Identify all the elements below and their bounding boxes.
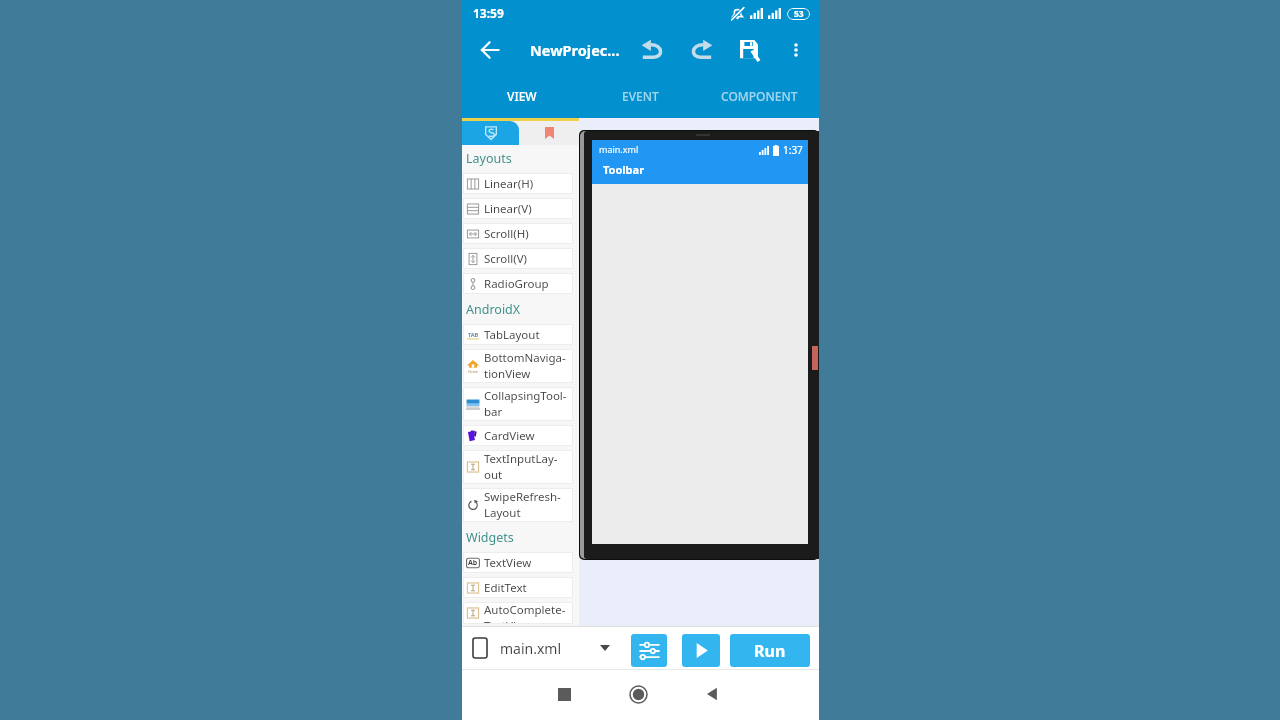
staticText: RadioGroup [484, 276, 549, 292]
button[interactable]: Home [463, 349, 573, 383]
staticText: Toolbar [603, 162, 645, 177]
staticText: BottomNaviga- [484, 350, 566, 366]
staticText: CollapsingTool- [484, 388, 567, 404]
button[interactable]: Scroll(H) [463, 223, 573, 244]
staticText: 53 [794, 8, 804, 20]
staticText: EditText [484, 580, 527, 596]
button[interactable]: EditText [463, 577, 573, 598]
button[interactable]: Save [724, 26, 775, 73]
button[interactable]: Run [730, 634, 810, 667]
button[interactable]: Redo [678, 27, 724, 73]
staticText: 13:59 [473, 5, 504, 21]
staticText: Linear(V) [484, 201, 532, 217]
button[interactable]: CollapsingTool- [463, 387, 573, 421]
button[interactable]: CardView [463, 425, 573, 446]
button[interactable]: Linear(H) [463, 173, 573, 194]
staticText: TAB [468, 331, 479, 338]
staticText: VIEW [507, 88, 537, 104]
staticText: NewProjec... [530, 40, 620, 60]
button[interactable]: Ab [463, 552, 573, 573]
staticText: tionView [484, 366, 531, 382]
button[interactable]: Project settings [631, 634, 667, 667]
staticText: AutoComplete- [484, 602, 566, 618]
staticText: Run [754, 640, 786, 662]
button[interactable]: Favorites palette [519, 121, 579, 145]
staticText: Linear(H) [484, 176, 534, 192]
staticText: main.xml [500, 639, 562, 658]
button[interactable]: More options [775, 29, 817, 71]
staticText: Scroll(H) [484, 226, 529, 242]
button[interactable]: Back [474, 34, 506, 66]
staticText: SwipeRefresh- [484, 489, 561, 505]
button[interactable]: TextInputLay- [463, 450, 573, 484]
staticText: bar [484, 404, 503, 420]
button[interactable]: Select file main.xml [462, 638, 618, 658]
button[interactable]: Home [618, 674, 658, 714]
button[interactable]: Back [692, 674, 732, 714]
button[interactable]: Recent apps [544, 674, 584, 714]
staticText: Scroll(V) [484, 251, 528, 267]
button[interactable]: TAB [463, 324, 573, 345]
button[interactable]: Preview [682, 634, 720, 667]
button[interactable]: Undo [626, 26, 678, 73]
staticText: Layouts [466, 150, 512, 167]
staticText: out [484, 467, 503, 483]
button[interactable]: SwipeRefresh- [463, 488, 573, 522]
staticText: TextView [484, 618, 532, 624]
staticText: Home [468, 369, 478, 374]
staticText: main.xml [599, 143, 639, 155]
button[interactable]: RadioGroup [463, 273, 573, 294]
staticText: Ab [468, 558, 478, 568]
button[interactable]: Scroll(V) [463, 248, 573, 269]
staticText: AndroidX [466, 301, 521, 318]
staticText: TextInputLay- [484, 451, 558, 467]
staticText: COMPONENT [721, 88, 798, 104]
staticText: Widgets [466, 529, 514, 546]
button[interactable]: COMPONENT [700, 73, 819, 118]
staticText: TextView [484, 555, 532, 571]
button[interactable]: VIEW [462, 73, 581, 118]
staticText: Layout [484, 505, 521, 521]
button[interactable]: Widgets palette [462, 121, 519, 145]
staticText: EVENT [622, 88, 659, 104]
button[interactable]: Linear(V) [463, 198, 573, 219]
staticText: CardView [484, 428, 535, 444]
staticText: 1:37 [783, 143, 803, 157]
staticText: TabLayout [484, 327, 540, 343]
button[interactable]: AutoComplete- [463, 602, 573, 624]
button[interactable]: EVENT [581, 73, 700, 118]
